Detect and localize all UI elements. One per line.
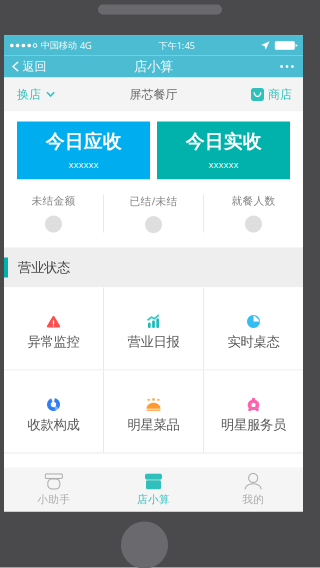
- button[interactable]: More options: [270, 55, 303, 77]
- button[interactable]: 实时桌态: [204, 287, 303, 369]
- button[interactable]: 收款构成: [4, 370, 103, 452]
- button[interactable]: 今日实收: [157, 121, 290, 179]
- staticText: 店小算: [134, 58, 173, 75]
- staticText: 今日实收: [185, 130, 261, 153]
- staticText: 营业日报: [127, 333, 179, 350]
- staticText: 我的: [242, 493, 264, 506]
- button[interactable]: 今日应收: [17, 121, 150, 179]
- button[interactable]: 明星服务员: [204, 370, 303, 452]
- staticText: 屏芯餐厅: [129, 87, 177, 102]
- staticText: 实时桌态: [227, 333, 279, 350]
- staticText: 明星菜品: [127, 416, 179, 433]
- button[interactable]: 商店: [241, 77, 303, 111]
- staticText: 明星服务员: [221, 416, 286, 433]
- staticText: 异常监控: [27, 333, 79, 350]
- button[interactable]: 小助手: [4, 467, 104, 511]
- staticText: xxxxxx: [68, 158, 98, 171]
- staticText: 下午1:45: [158, 39, 194, 52]
- staticText: 中国移动: [41, 40, 77, 51]
- button[interactable]: 换店: [4, 77, 65, 111]
- staticText: 小助手: [37, 493, 70, 506]
- button[interactable]: 明星菜品: [104, 370, 203, 452]
- button[interactable]: 我的: [203, 467, 303, 511]
- button[interactable]: 返回: [4, 55, 57, 77]
- staticText: 未结金额: [31, 194, 75, 207]
- staticText: 店小算: [137, 493, 170, 506]
- staticText: 收款构成: [27, 416, 79, 433]
- staticText: 换店: [17, 87, 41, 102]
- staticText: xxxxxx: [208, 158, 238, 171]
- staticText: 已结/未结: [129, 194, 177, 208]
- staticText: 营业状态: [18, 259, 70, 276]
- staticText: 就餐人数: [231, 194, 275, 207]
- staticText: 今日应收: [45, 130, 121, 153]
- button[interactable]: 营业日报: [104, 287, 203, 369]
- staticText: 返回: [23, 59, 47, 74]
- button[interactable]: 异常监控: [4, 287, 103, 369]
- staticText: 4G: [80, 39, 92, 52]
- staticText: 商店: [268, 87, 292, 102]
- button[interactable]: 店小算: [104, 467, 203, 511]
